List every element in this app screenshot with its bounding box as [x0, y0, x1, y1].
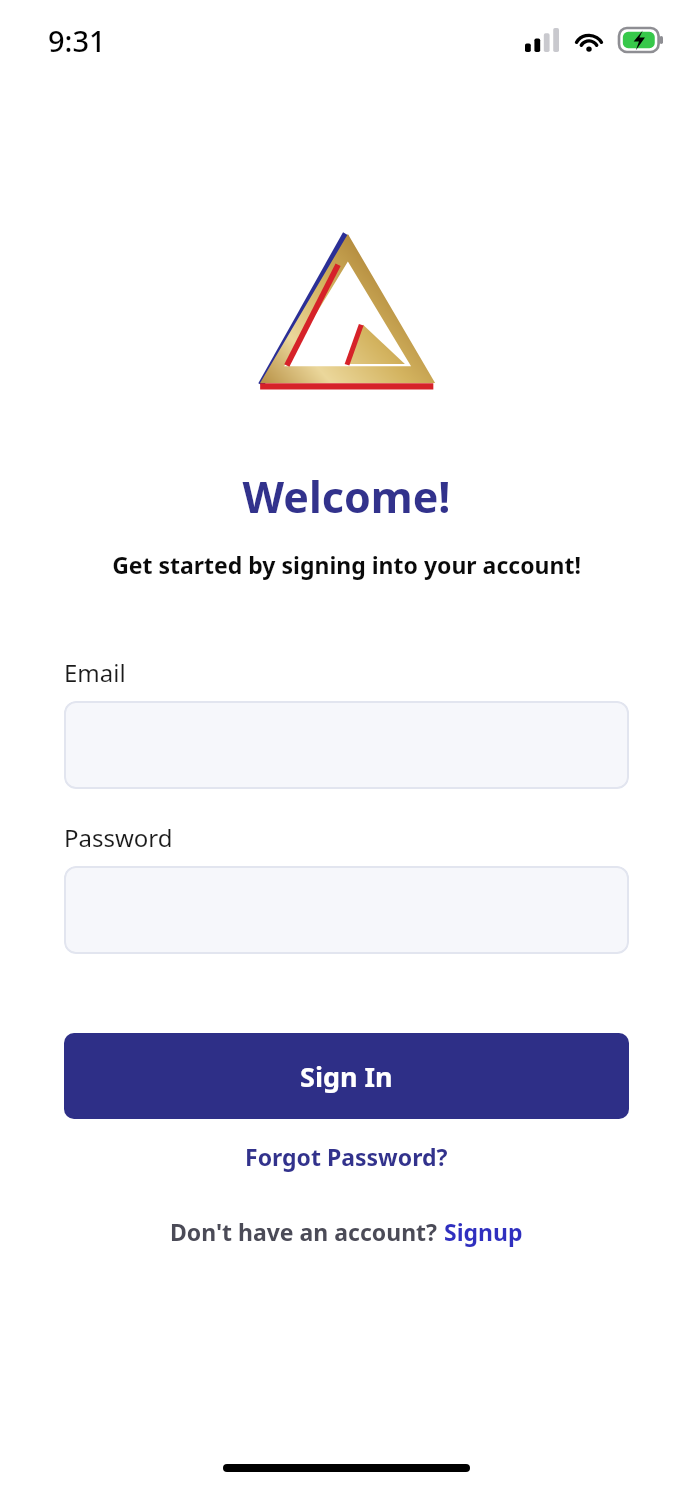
button[interactable]: [64, 866, 629, 954]
button[interactable]: Sign In: [64, 1033, 629, 1119]
button[interactable]: [64, 701, 629, 789]
staticText: Forgot Password?: [245, 1141, 448, 1172]
staticText: Get started by signing into your account…: [0, 549, 693, 580]
button[interactable]: Signup: [444, 1216, 523, 1247]
staticText: Email: [64, 656, 126, 689]
staticText: 9:31: [48, 21, 106, 60]
staticText: Password: [64, 821, 173, 854]
staticText: Don't have an account?: [170, 1216, 444, 1247]
staticText: Signup: [444, 1216, 523, 1247]
button[interactable]: Forgot Password?: [64, 1133, 629, 1180]
staticText: Sign In: [300, 1058, 393, 1095]
staticText: Welcome!: [0, 467, 693, 526]
